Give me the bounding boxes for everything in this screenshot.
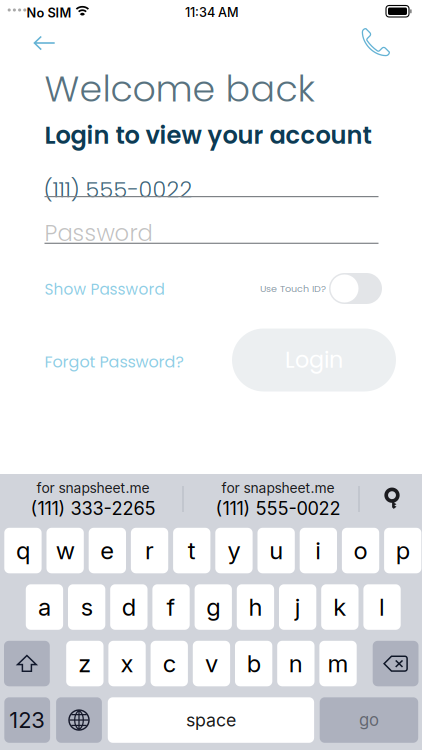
staticText: y: [227, 536, 240, 565]
staticText: k: [333, 592, 346, 621]
staticText: Login to view your account: [44, 118, 371, 152]
button[interactable]: s: [68, 584, 105, 630]
staticText: Password: [44, 217, 152, 249]
button[interactable]: e: [89, 528, 126, 573]
staticText: x: [121, 649, 134, 678]
staticText: (111) 555-0022: [43, 174, 192, 205]
staticText: go: [359, 710, 379, 730]
staticText: h: [248, 592, 262, 621]
button[interactable]: 123: [4, 697, 50, 743]
staticText: Login: [285, 344, 343, 376]
staticText: r: [145, 536, 154, 565]
button[interactable]: v: [193, 641, 230, 686]
button[interactable]: Call: [352, 22, 396, 62]
button[interactable]: t: [173, 528, 210, 573]
staticText: t: [188, 536, 196, 565]
staticText: n: [289, 649, 303, 678]
button[interactable]: for snapsheet.me: [195, 474, 361, 525]
button[interactable]: w: [46, 528, 84, 573]
button[interactable]: Shift: [4, 641, 50, 686]
button[interactable]: go: [320, 697, 418, 743]
staticText: i: [315, 536, 321, 565]
staticText: q: [16, 536, 30, 565]
staticText: (111) 333-2265: [30, 497, 155, 519]
button[interactable]: Passwords: [384, 489, 402, 510]
button[interactable]: p: [384, 528, 421, 573]
button[interactable]: g: [195, 584, 232, 630]
staticText: Welcome back: [44, 63, 314, 114]
button[interactable]: Login: [232, 328, 396, 391]
staticText: e: [100, 536, 114, 565]
staticText: u: [269, 536, 283, 565]
button[interactable]: a: [26, 584, 63, 630]
staticText: Forgot Password?: [44, 351, 183, 373]
button[interactable]: h: [237, 584, 274, 630]
staticText: z: [78, 649, 91, 678]
staticText: g: [206, 592, 220, 621]
staticText: Show Password: [44, 279, 164, 300]
staticText: s: [81, 592, 93, 621]
staticText: for snapsheet.me: [36, 480, 149, 496]
button[interactable]: m: [319, 641, 357, 686]
staticText: m: [327, 649, 348, 678]
staticText: 11:34 AM: [185, 5, 239, 20]
button[interactable]: j: [279, 584, 316, 630]
staticText: o: [353, 536, 367, 565]
staticText: c: [163, 649, 176, 678]
button[interactable]: for snapsheet.me: [10, 474, 176, 525]
staticText: j: [295, 592, 301, 621]
button[interactable]: Back: [23, 23, 67, 63]
button[interactable]: q: [4, 528, 42, 573]
button[interactable]: d: [110, 584, 147, 630]
button[interactable]: x: [108, 641, 146, 686]
button[interactable]: u: [257, 528, 295, 573]
button[interactable]: Use Touch ID: [329, 273, 382, 304]
button[interactable]: f: [152, 584, 190, 630]
staticText: v: [205, 649, 218, 678]
staticText: a: [38, 592, 51, 621]
button[interactable]: b: [235, 641, 272, 686]
staticText: Use Touch ID?: [260, 282, 326, 295]
staticText: f: [167, 592, 176, 621]
staticText: b: [247, 649, 261, 678]
button[interactable]: k: [321, 584, 358, 630]
button[interactable]: y: [215, 528, 253, 573]
button[interactable]: n: [277, 641, 314, 686]
button[interactable]: Next keyboard: [56, 697, 102, 743]
button[interactable]: o: [342, 528, 379, 573]
button[interactable]: Forgot Password?: [44, 351, 183, 373]
staticText: l: [379, 592, 385, 621]
staticText: for snapsheet.me: [221, 480, 334, 496]
button[interactable]: l: [363, 584, 401, 630]
button[interactable]: i: [300, 528, 337, 573]
staticText: w: [56, 536, 75, 565]
staticText: space: [186, 709, 236, 731]
staticText: 123: [9, 707, 45, 733]
button[interactable]: space: [108, 697, 314, 743]
button[interactable]: Show Password: [44, 279, 164, 300]
button[interactable]: z: [66, 641, 103, 686]
button[interactable]: Delete: [373, 641, 418, 686]
staticText: p: [396, 536, 410, 565]
staticText: No SIM: [26, 5, 71, 21]
staticText: (111) 555-0022: [215, 497, 340, 519]
staticText: d: [122, 592, 136, 621]
button[interactable]: r: [131, 528, 168, 573]
button[interactable]: c: [151, 641, 188, 686]
